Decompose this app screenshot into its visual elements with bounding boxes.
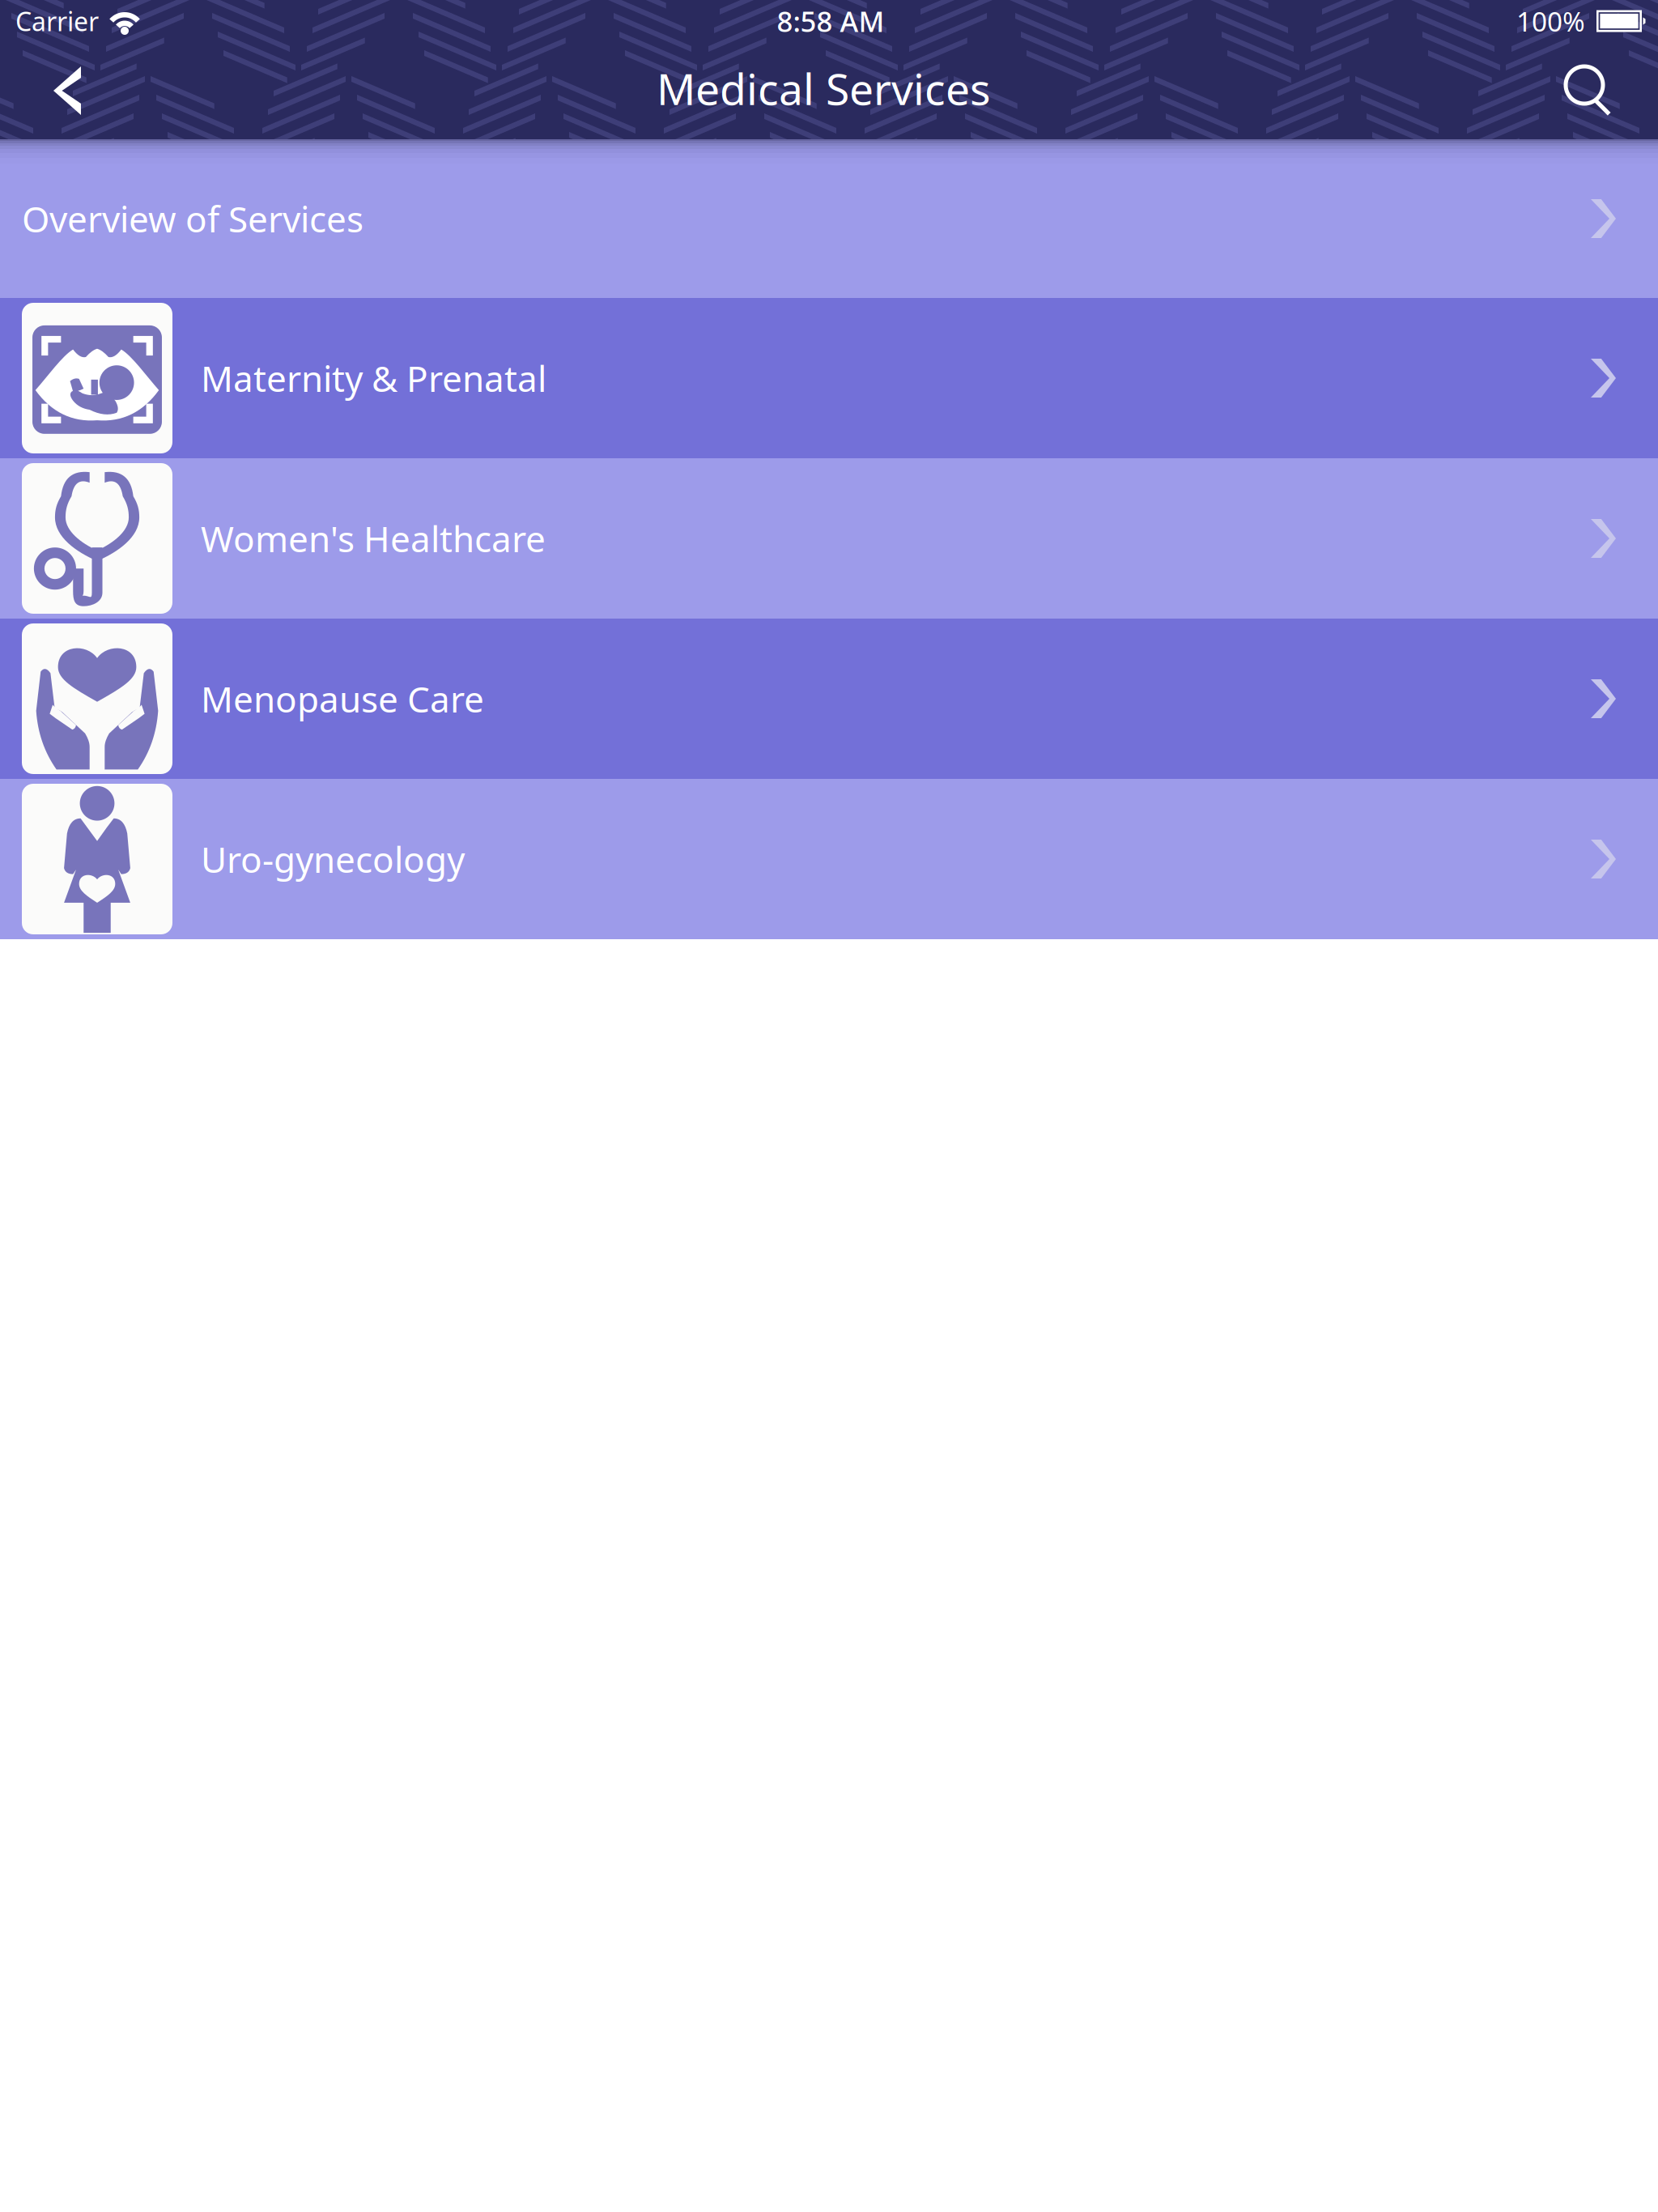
button[interactable]: Menopause Care xyxy=(0,619,1658,779)
staticText: 8:58 AM xyxy=(777,2,884,40)
button[interactable]: Women's Healthcare xyxy=(0,458,1658,619)
button[interactable]: Maternity & Prenatal xyxy=(0,298,1658,458)
staticText: Menopause Care xyxy=(201,675,484,722)
button[interactable]: Uro-gynecology xyxy=(0,779,1658,939)
staticText: Carrier xyxy=(15,4,99,38)
staticText: Women's Healthcare xyxy=(201,515,546,562)
button[interactable]: Back xyxy=(0,45,105,137)
staticText: Medical Services xyxy=(657,60,991,117)
staticText: Uro-gynecology xyxy=(201,835,465,883)
button[interactable]: Overview of Services xyxy=(0,139,1658,298)
button[interactable]: Search xyxy=(1542,47,1658,134)
staticText: 100% xyxy=(1516,3,1585,39)
staticText: Overview of Services xyxy=(22,195,363,242)
staticText: Maternity & Prenatal xyxy=(201,354,546,402)
